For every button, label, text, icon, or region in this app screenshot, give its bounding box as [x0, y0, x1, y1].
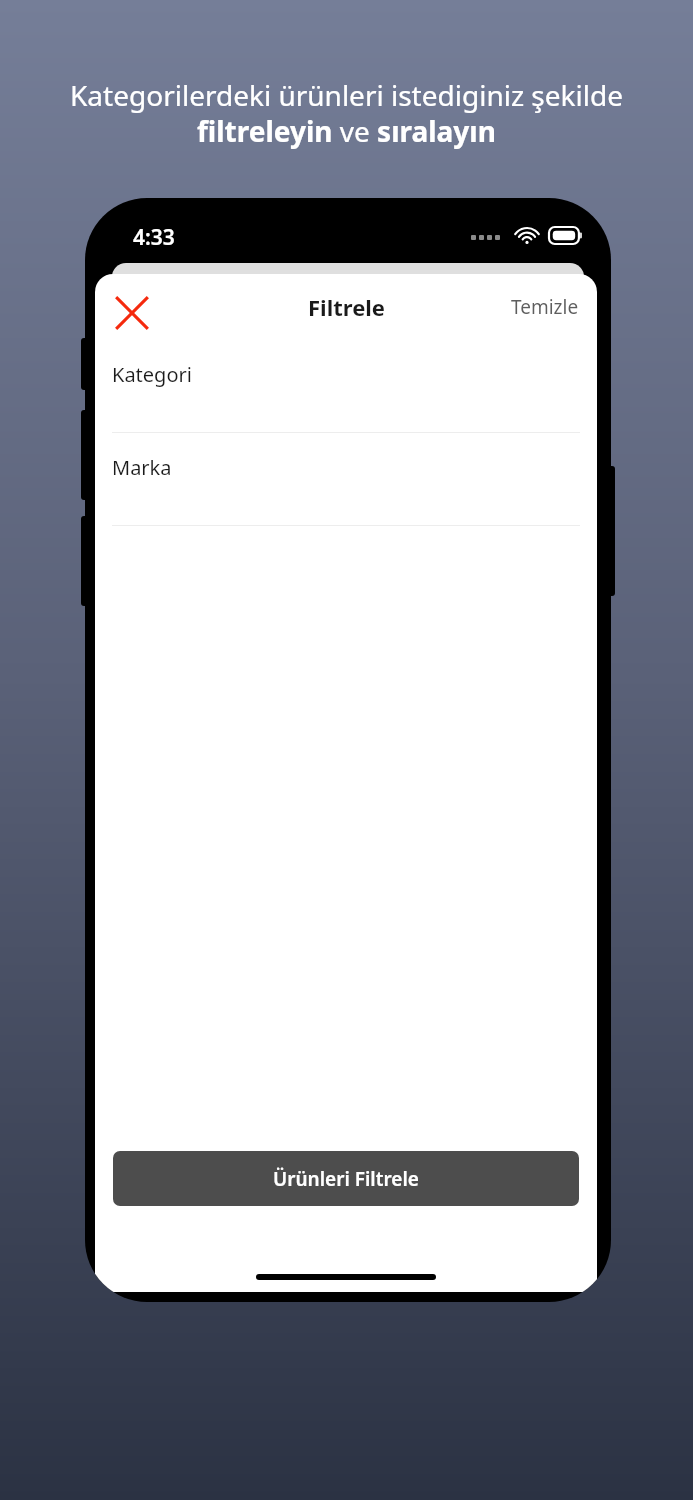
- staticText: Kategori: [112, 361, 192, 388]
- button[interactable]: Ürünleri Filtrele: [113, 1151, 579, 1206]
- button[interactable]: Temizle: [497, 282, 593, 332]
- staticText: Temizle: [511, 294, 579, 320]
- staticText: 4:33: [133, 223, 175, 252]
- staticText: Ürünleri Filtrele: [273, 1166, 419, 1192]
- staticText: Marka: [112, 454, 172, 481]
- button[interactable]: Kategori: [95, 340, 597, 433]
- staticText: Filtrele: [308, 292, 385, 322]
- button[interactable]: Marka: [95, 433, 597, 526]
- staticText: Kategorilerdeki ürünleri istediginiz şek…: [60, 76, 633, 150]
- button[interactable]: Kapat: [103, 284, 161, 342]
